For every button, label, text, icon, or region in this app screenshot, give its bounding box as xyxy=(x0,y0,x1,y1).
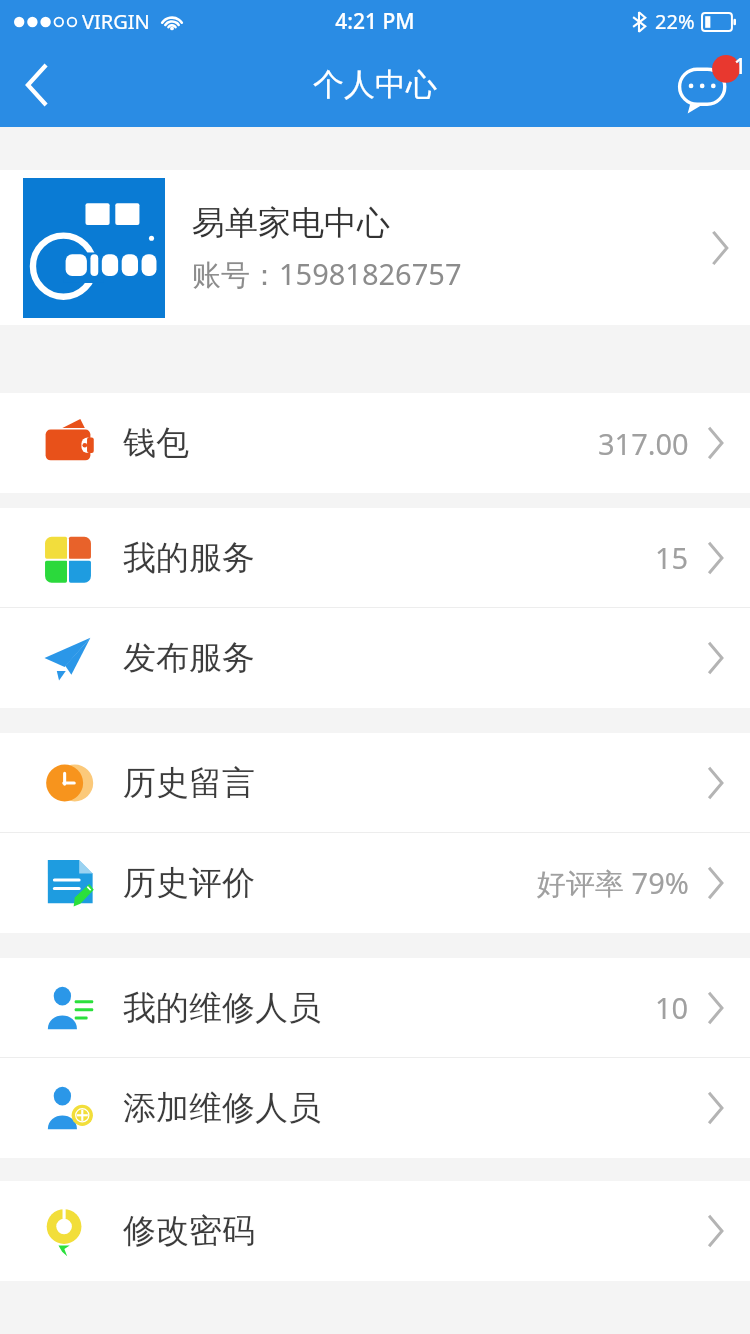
staticText: 钱包 xyxy=(123,422,189,464)
button[interactable]: 历史留言 xyxy=(0,733,750,832)
staticText: 317.00 xyxy=(598,424,689,463)
button[interactable]: Messages xyxy=(668,42,750,127)
staticText: 我的服务 xyxy=(123,537,255,579)
staticText: 账号：15981826757 xyxy=(192,254,462,294)
staticText: VIRGIN xyxy=(82,8,150,35)
staticText: 好评率 79% xyxy=(537,863,689,903)
button[interactable]: 添加维修人员 xyxy=(0,1058,750,1158)
button[interactable]: 易单家电中心 xyxy=(0,170,750,325)
button[interactable]: 历史评价 xyxy=(0,833,750,933)
staticText: 修改密码 xyxy=(123,1210,255,1252)
staticText: 15 xyxy=(655,538,689,577)
button[interactable]: Back xyxy=(0,42,74,127)
staticText: 添加维修人员 xyxy=(123,1087,321,1129)
button[interactable]: 修改密码 xyxy=(0,1181,750,1281)
staticText: 4:21 PM xyxy=(335,7,415,36)
staticText: 1 xyxy=(734,52,747,81)
staticText: 10 xyxy=(655,988,689,1027)
staticText: 历史留言 xyxy=(123,762,255,804)
button[interactable]: 钱包 xyxy=(0,393,750,493)
staticText: 发布服务 xyxy=(123,637,255,679)
staticText: 历史评价 xyxy=(123,862,255,904)
staticText: 22% xyxy=(655,8,695,35)
staticText: 个人中心 xyxy=(313,65,437,104)
staticText: 易单家电中心 xyxy=(192,202,390,244)
button[interactable]: 我的维修人员 xyxy=(0,958,750,1057)
staticText: 我的维修人员 xyxy=(123,987,321,1029)
button[interactable]: 发布服务 xyxy=(0,608,750,708)
button[interactable]: 我的服务 xyxy=(0,508,750,607)
